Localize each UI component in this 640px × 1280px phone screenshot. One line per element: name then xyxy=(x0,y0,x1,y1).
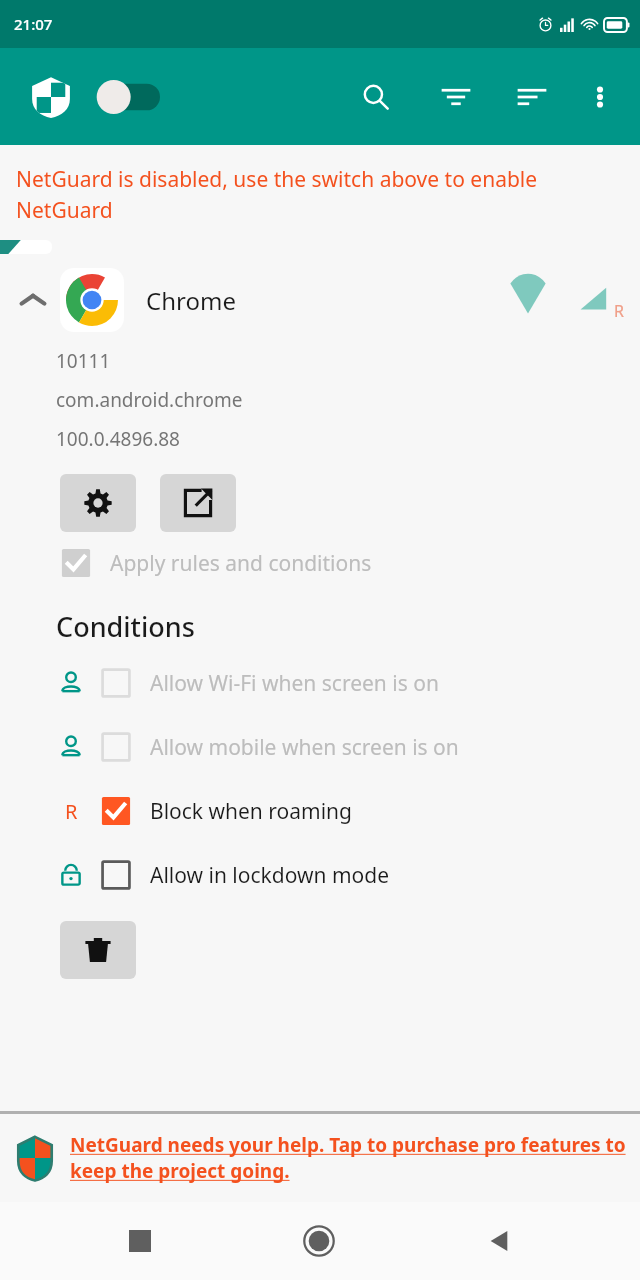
button[interactable]: Search xyxy=(350,71,402,123)
button[interactable]: R xyxy=(56,779,640,843)
staticText: NetGuard needs your help. Tap to purchas… xyxy=(70,1132,626,1184)
staticText: NetGuard is disabled, use the switch abo… xyxy=(16,165,624,224)
button[interactable]: Allow mobile when screen is on xyxy=(56,715,640,779)
staticText: com.android.chrome xyxy=(56,387,243,413)
staticText: R xyxy=(65,798,78,825)
button[interactable]: Home xyxy=(280,1202,358,1280)
button[interactable]: Enable NetGuard xyxy=(96,74,168,120)
button[interactable]: NetGuard xyxy=(28,74,74,120)
staticText: R xyxy=(614,300,624,322)
staticText: 21:07 xyxy=(14,14,53,34)
button[interactable]: Allow in lockdown mode xyxy=(56,843,640,907)
staticText: Conditions xyxy=(56,608,195,645)
staticText: Chrome xyxy=(146,284,236,317)
button[interactable]: Delete rules xyxy=(60,921,136,979)
button[interactable]: More options xyxy=(576,73,624,121)
button[interactable]: Filter xyxy=(430,71,482,123)
staticText: 10111 xyxy=(56,348,111,374)
button[interactable]: Sort xyxy=(506,71,558,123)
button[interactable]: App settings xyxy=(60,474,136,532)
staticText: 100.0.4896.88 xyxy=(56,426,180,452)
button[interactable]: Allow Wi-Fi when screen is on xyxy=(56,651,640,715)
button[interactable]: Apply rules and conditions xyxy=(60,532,640,594)
staticText: Allow in lockdown mode xyxy=(150,861,390,890)
staticText: Apply rules and conditions xyxy=(110,549,372,578)
button[interactable]: Recent apps xyxy=(101,1202,179,1280)
staticText: Allow Wi-Fi when screen is on xyxy=(150,669,439,698)
button[interactable]: Open app xyxy=(160,474,236,532)
button[interactable]: NetGuard needs your help. Tap to purchas… xyxy=(0,1114,640,1202)
staticText: Allow mobile when screen is on xyxy=(150,733,459,762)
staticText: Block when roaming xyxy=(150,797,352,826)
button[interactable]: Back xyxy=(460,1202,538,1280)
button[interactable]: Chrome xyxy=(0,254,640,346)
